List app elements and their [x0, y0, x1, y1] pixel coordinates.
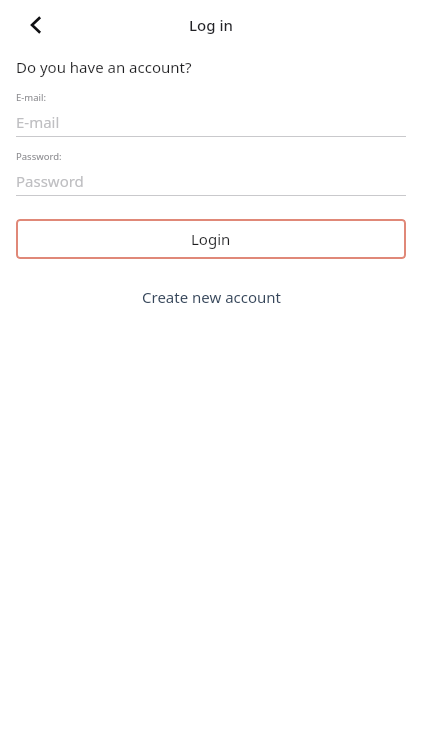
staticText: E-mail — [16, 112, 60, 132]
staticText: E-mail: — [16, 91, 47, 104]
staticText: Create new account — [142, 287, 281, 307]
button[interactable]: E-mail — [16, 112, 406, 137]
staticText: Log in — [189, 15, 233, 35]
button[interactable]: Password — [16, 171, 406, 196]
staticText: Password — [16, 171, 84, 191]
staticText: Do you have an account? — [16, 57, 192, 77]
staticText: Password: — [16, 150, 62, 163]
staticText: Login — [191, 229, 231, 249]
button[interactable]: Login — [16, 219, 406, 259]
button[interactable]: Create new account — [0, 281, 422, 313]
button[interactable]: Back — [14, 3, 58, 47]
